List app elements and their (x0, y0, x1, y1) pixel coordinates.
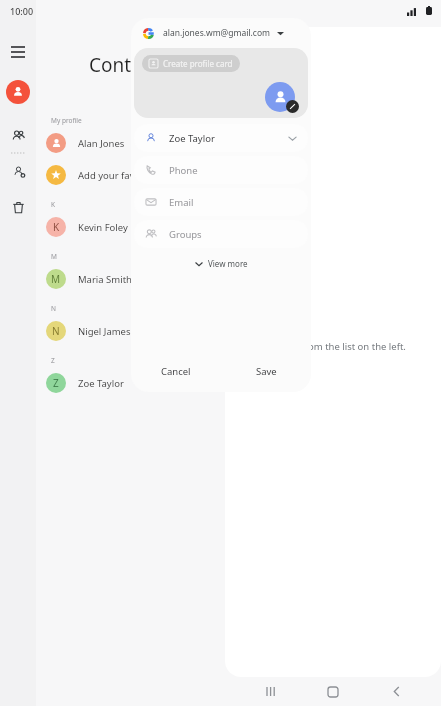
button[interactable]: Z (36, 367, 226, 399)
staticText: Select a contact from the list on the le… (229, 340, 406, 353)
button[interactable]: Alan Jones (36, 127, 226, 159)
button[interactable]: Add your favorites (36, 159, 226, 191)
button[interactable]: Home (316, 677, 350, 706)
button[interactable]: Manage contacts (5, 158, 31, 184)
staticText: Save (256, 365, 277, 378)
button[interactable]: Recents (254, 677, 288, 706)
staticText: My profile (51, 116, 82, 125)
staticText: Maria Smith (78, 273, 132, 286)
staticText: Groups (169, 228, 202, 241)
button[interactable]: View more (191, 254, 252, 273)
button[interactable]: Create profile card (142, 55, 240, 72)
staticText: Z (53, 376, 59, 390)
button[interactable]: Zoe Taylor (134, 124, 308, 152)
staticText: Cancel (161, 365, 191, 378)
button[interactable]: Groups (134, 220, 308, 248)
staticText: 10:00 (10, 5, 34, 17)
button[interactable]: Profile photo (265, 82, 295, 112)
staticText: N (52, 324, 60, 338)
button[interactable]: M (36, 263, 226, 295)
button[interactable]: Phone (134, 156, 308, 184)
staticText: View more (208, 258, 248, 269)
staticText: Zoe Taylor (169, 132, 215, 145)
staticText: Email (169, 196, 194, 209)
staticText: Alan Jones (78, 137, 125, 150)
staticText: Contacts (89, 52, 167, 78)
button[interactable]: K (36, 211, 226, 243)
staticText: Phone (169, 164, 198, 177)
staticText: Z (51, 356, 55, 365)
staticText: Create profile card (163, 58, 233, 69)
staticText: Add your favorites (78, 169, 160, 182)
staticText: M (51, 252, 57, 261)
staticText: alan.jones.wm@gmail.com (163, 27, 271, 39)
staticText: N (51, 304, 56, 313)
staticText: Zoe Taylor (78, 377, 124, 390)
button[interactable]: Trash (5, 194, 31, 220)
button[interactable]: Groups (5, 122, 31, 148)
staticText: Nigel Jameson (78, 325, 143, 338)
button[interactable]: Contacts (6, 80, 30, 104)
staticText: K (51, 200, 56, 209)
button[interactable]: Save (221, 350, 311, 392)
button[interactable]: Back (379, 677, 413, 706)
staticText: Kevin Foley (78, 221, 128, 234)
staticText: M (51, 272, 61, 286)
button[interactable]: alan.jones.wm@gmail.com (131, 18, 311, 48)
button[interactable]: Cancel (131, 350, 221, 392)
button[interactable]: Edit photo (286, 100, 299, 113)
button[interactable]: Email (134, 188, 308, 216)
staticText: K (53, 220, 60, 234)
button[interactable]: N (36, 315, 226, 347)
button[interactable]: Menu (2, 36, 34, 68)
